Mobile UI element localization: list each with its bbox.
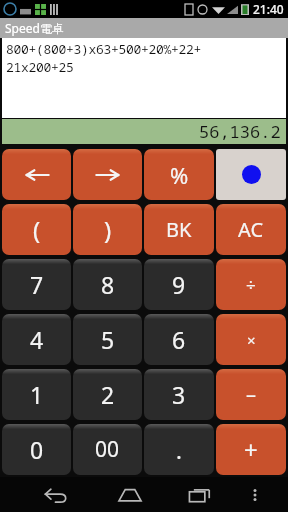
staticText: ÷ bbox=[246, 273, 256, 296]
staticText: 800+(800+3)x63+500+20%+22+ bbox=[6, 40, 202, 58]
button[interactable]: 7 bbox=[2, 259, 71, 310]
button[interactable]: Record bbox=[216, 149, 286, 200]
staticText: 3 bbox=[172, 379, 186, 410]
button[interactable]: ) bbox=[73, 204, 142, 255]
button[interactable]: 00 bbox=[73, 424, 142, 475]
staticText: + bbox=[244, 433, 258, 466]
button[interactable]: 8 bbox=[73, 259, 142, 310]
button[interactable]: . bbox=[144, 424, 214, 475]
button[interactable]: ( bbox=[2, 204, 71, 255]
button[interactable]: 1 bbox=[2, 369, 71, 420]
staticText: 0 bbox=[30, 434, 44, 465]
staticText: 7 bbox=[30, 269, 44, 300]
staticText: ( bbox=[33, 213, 41, 246]
button[interactable]: 0 bbox=[2, 424, 71, 475]
button[interactable]: More options bbox=[235, 477, 274, 512]
staticText: 00 bbox=[95, 435, 120, 464]
button[interactable]: 9 bbox=[144, 259, 214, 310]
staticText: ) bbox=[104, 213, 112, 246]
button[interactable]: Cursor left bbox=[2, 149, 71, 200]
staticText: 6 bbox=[172, 324, 186, 355]
button[interactable]: 6 bbox=[144, 314, 214, 365]
staticText: BK bbox=[166, 216, 192, 243]
button[interactable]: Back bbox=[14, 477, 95, 512]
staticText: Speed電卓 bbox=[5, 20, 64, 36]
staticText: 21:40 bbox=[253, 1, 284, 17]
button[interactable]: AC bbox=[216, 204, 286, 255]
button[interactable]: Multiply bbox=[216, 314, 286, 365]
staticText: % bbox=[170, 160, 189, 190]
button[interactable]: 3 bbox=[144, 369, 214, 420]
button[interactable]: 2 bbox=[73, 369, 142, 420]
button[interactable]: Minus bbox=[216, 369, 286, 420]
button[interactable]: % bbox=[144, 149, 214, 200]
staticText: 56,136.2 bbox=[199, 120, 281, 143]
staticText: × bbox=[247, 330, 256, 350]
staticText: 9 bbox=[172, 269, 186, 300]
staticText: 8 bbox=[101, 269, 115, 300]
button[interactable]: BK bbox=[144, 204, 214, 255]
staticText: 4 bbox=[30, 324, 44, 355]
staticText: 2 bbox=[101, 379, 115, 410]
button[interactable]: Home bbox=[95, 477, 165, 512]
staticText: 5 bbox=[101, 324, 115, 355]
staticText: – bbox=[246, 381, 256, 408]
staticText: 21x200+25 bbox=[6, 58, 74, 76]
staticText: . bbox=[176, 435, 182, 465]
button[interactable]: Cursor right bbox=[73, 149, 142, 200]
staticText: AC bbox=[238, 216, 264, 243]
button[interactable]: 5 bbox=[73, 314, 142, 365]
staticText: 1 bbox=[30, 379, 44, 410]
button[interactable]: 4 bbox=[2, 314, 71, 365]
button[interactable]: Plus bbox=[216, 424, 286, 475]
button[interactable]: Recent apps bbox=[165, 477, 235, 512]
button[interactable]: Divide bbox=[216, 259, 286, 310]
